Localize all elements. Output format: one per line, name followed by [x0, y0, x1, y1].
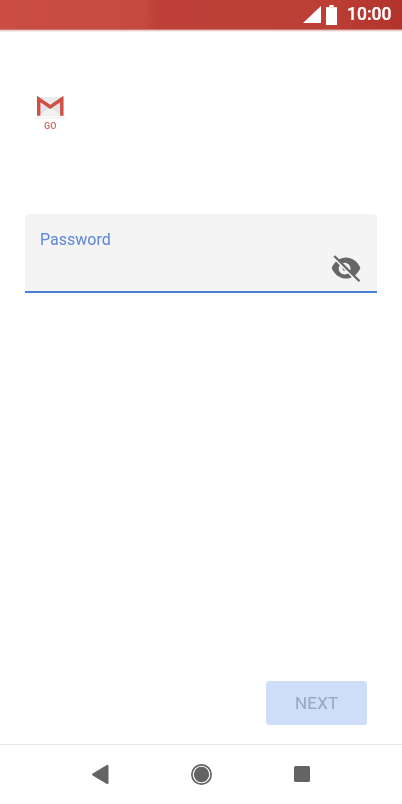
button[interactable]: Home: [177, 750, 225, 798]
button[interactable]: Show password: [324, 246, 368, 290]
staticText: NEXT: [295, 693, 339, 713]
staticText: 10:00: [347, 4, 392, 25]
button[interactable]: Password: [25, 214, 377, 291]
button[interactable]: NEXT: [266, 681, 367, 725]
staticText: Password: [40, 230, 111, 249]
button[interactable]: Back: [76, 750, 124, 798]
staticText: GO: [44, 121, 57, 132]
button[interactable]: Recents: [278, 750, 326, 798]
